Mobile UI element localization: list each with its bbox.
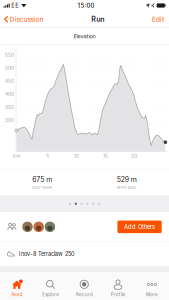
staticText: Discussion xyxy=(9,15,43,23)
button[interactable]: Profile xyxy=(101,272,135,300)
staticText: 450 xyxy=(5,78,14,84)
staticText: Run xyxy=(91,15,104,23)
staticText: 550 xyxy=(5,52,14,58)
staticText: Record xyxy=(76,292,93,297)
staticText: 400 xyxy=(5,91,14,97)
staticText: 15:00 xyxy=(77,2,94,9)
staticText: Explore xyxy=(42,292,59,297)
staticText: EE xyxy=(11,2,19,9)
button[interactable]: More xyxy=(135,272,169,300)
staticText: 300 xyxy=(5,117,14,123)
staticText: 20 xyxy=(131,153,137,159)
staticText: Profile xyxy=(111,292,126,297)
staticText: 10 xyxy=(74,153,79,159)
button[interactable]: Add Others xyxy=(117,221,162,233)
button[interactable]: Edit xyxy=(152,11,169,27)
button[interactable]: Record xyxy=(68,272,101,300)
staticText: Elevation xyxy=(73,33,95,39)
button[interactable]: Feed xyxy=(0,272,34,300)
staticText: Inov-8 Terraclaw 250 xyxy=(19,251,75,257)
button[interactable]: Discussion xyxy=(0,11,43,27)
staticText: 675 m xyxy=(32,175,52,184)
staticText: 15 xyxy=(103,153,108,159)
staticText: 5 xyxy=(46,153,49,159)
staticText: km xyxy=(13,153,20,159)
staticText: More xyxy=(146,292,158,297)
staticText: ELEV GAIN xyxy=(32,185,52,190)
button[interactable]: Inov-8 Terraclaw 250 xyxy=(0,242,169,266)
staticText: 350 xyxy=(5,104,14,110)
staticText: 529 m xyxy=(117,175,137,184)
staticText: MAX ELEV xyxy=(117,185,137,190)
staticText: Feed xyxy=(11,292,22,297)
staticText: Edit xyxy=(152,15,164,23)
staticText: Add Others xyxy=(124,223,155,230)
staticText: 500 xyxy=(5,65,14,71)
button[interactable]: Explore xyxy=(34,272,68,300)
